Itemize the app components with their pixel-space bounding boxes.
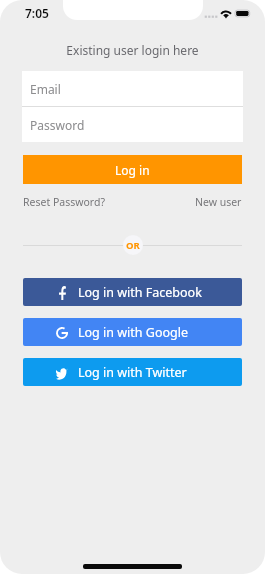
staticText: Log in with Twitter [78,364,187,381]
staticText: Email [30,81,61,97]
staticText: Log in with Facebook [78,284,202,301]
other: Status icons [203,8,253,20]
staticText: Log in [115,162,150,178]
button[interactable]: Password [22,107,243,142]
button[interactable]: New user [195,195,242,209]
button[interactable]: Log in [23,155,242,184]
staticText: OR [126,239,140,252]
staticText: 7:05 [25,5,49,21]
staticText: Password [30,117,85,133]
staticText: Log in with Google [78,324,188,341]
staticText: Existing user login here [0,42,265,58]
button[interactable]: Log in with Google [23,318,242,346]
button[interactable]: Log in with Facebook [23,278,242,306]
button[interactable]: Log in with Twitter [23,358,242,386]
button[interactable]: Reset Password? [23,195,105,209]
button[interactable]: Email [22,71,243,106]
